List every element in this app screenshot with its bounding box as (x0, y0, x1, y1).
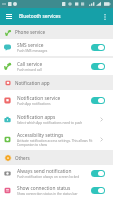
staticText: Always send notification (17, 168, 72, 175)
staticText: Activate notification access settings. T… (17, 139, 95, 147)
button[interactable]: SMS service (0, 39, 113, 56)
staticText: Call service (17, 61, 43, 68)
button[interactable]: Show connection status (0, 181, 113, 200)
staticText: Bluetooth services (19, 13, 61, 20)
button[interactable]: Toggle Always send notification (91, 170, 105, 177)
button[interactable]: Toggle SMS service (91, 44, 105, 51)
other: Open Notification apps (97, 115, 105, 123)
staticText: Notification service (17, 95, 61, 102)
button[interactable]: Notification apps (0, 110, 113, 128)
button[interactable]: Toggle Call service (91, 63, 105, 70)
staticText: SMS service (17, 42, 44, 49)
button[interactable]: Always send notification (0, 165, 113, 181)
button[interactable]: Open navigation menu (4, 12, 13, 21)
staticText: Show connection status in the status bar (17, 192, 78, 196)
staticText: Accessibility settings (17, 132, 64, 139)
staticText: Others (15, 155, 30, 161)
staticText: Notification apps (17, 114, 56, 121)
staticText: Push SMS messages (17, 49, 48, 53)
staticText: Show connection status (17, 185, 71, 192)
button[interactable]: Toggle Notification service (91, 97, 105, 104)
staticText: Notification app (15, 80, 50, 86)
button[interactable]: More options (100, 12, 109, 21)
button[interactable]: Accessibility settings (0, 128, 113, 150)
staticText: Push missed call (17, 68, 42, 72)
staticText: Select which App notifications need to p… (17, 121, 83, 125)
staticText: Phone service (15, 29, 46, 35)
staticText: Push App notifications (17, 102, 51, 106)
button[interactable]: Toggle Show connection status (91, 187, 105, 194)
other: Open Accessibility settings (97, 135, 105, 143)
button[interactable]: Call service (0, 58, 113, 75)
staticText: Push notification always on screen locke… (17, 175, 80, 179)
button[interactable]: Notification service (0, 90, 113, 110)
